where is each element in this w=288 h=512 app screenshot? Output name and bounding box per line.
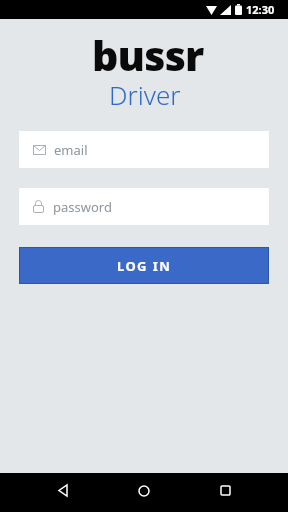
- staticText: email: [54, 141, 88, 159]
- button[interactable]: [198, 473, 252, 512]
- staticText: 12:30: [246, 2, 275, 17]
- button[interactable]: password: [19, 188, 269, 225]
- button[interactable]: LOG IN: [19, 247, 269, 284]
- button[interactable]: [117, 473, 171, 512]
- staticText: Driver: [109, 77, 181, 112]
- staticText: bussr: [92, 27, 204, 83]
- button[interactable]: [36, 473, 90, 512]
- staticText: LOG IN: [117, 257, 172, 275]
- button[interactable]: email: [19, 131, 269, 168]
- staticText: password: [53, 198, 112, 216]
